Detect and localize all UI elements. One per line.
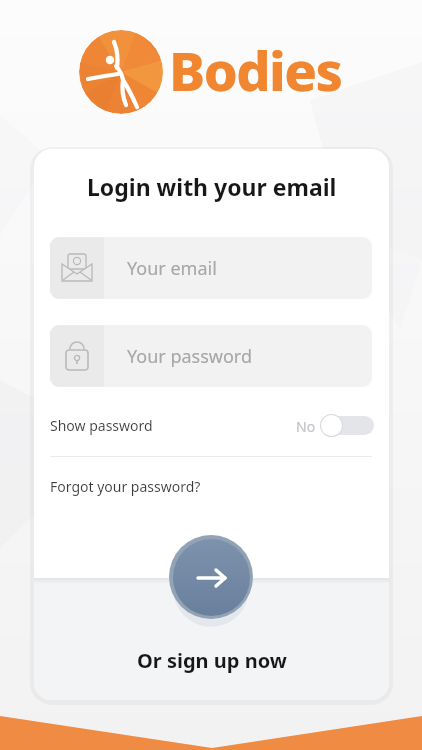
button[interactable]: Forgot your password? [50, 477, 201, 496]
button[interactable]: Your email [50, 237, 372, 299]
staticText: No [296, 417, 316, 436]
button[interactable] [321, 416, 374, 435]
button[interactable]: Or sign up now [137, 647, 287, 674]
staticText: Your password [127, 344, 253, 369]
button[interactable] [169, 535, 253, 619]
button[interactable]: Your password [50, 325, 372, 387]
staticText: Your email [127, 256, 217, 281]
staticText: Bodies [169, 33, 342, 107]
staticText: Show password [50, 416, 153, 435]
staticText: Login with your email [87, 171, 337, 202]
